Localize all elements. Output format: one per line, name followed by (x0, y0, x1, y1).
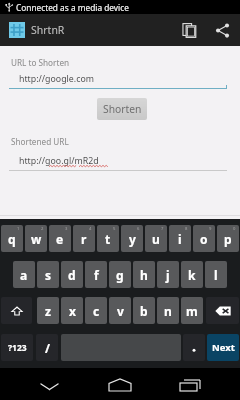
staticText: q (8, 231, 16, 247)
button[interactable]: URL to Shorten text field (9, 69, 228, 90)
staticText: h (140, 267, 148, 283)
button[interactable]: n (157, 297, 179, 324)
button[interactable]: s (37, 261, 59, 288)
staticText: l (214, 267, 218, 283)
button[interactable]: Home (104, 372, 136, 400)
button[interactable]: Share (206, 14, 238, 46)
staticText: 4 (89, 226, 92, 232)
button[interactable]: e (49, 225, 71, 252)
button[interactable]: Shift (1, 297, 32, 324)
staticText: http://goo.gl/mR2d (19, 155, 99, 167)
staticText: 2 (41, 226, 44, 232)
button[interactable]: q (1, 225, 23, 252)
staticText: i (178, 231, 182, 247)
button[interactable]: / (36, 334, 58, 361)
staticText: t (105, 231, 111, 247)
staticText: k (188, 267, 196, 283)
staticText: c (93, 303, 100, 319)
button[interactable]: o (193, 225, 215, 252)
staticText: n (164, 303, 172, 319)
button[interactable]: Hide keyboard (34, 372, 65, 400)
button[interactable]: Next (207, 334, 239, 361)
button[interactable]: w (25, 225, 47, 252)
button[interactable]: b (133, 297, 155, 324)
staticText: / (45, 340, 50, 356)
button[interactable]: ?123 (1, 334, 33, 361)
button[interactable]: z (37, 297, 59, 324)
staticText: 3 (65, 226, 68, 232)
button[interactable]: t (97, 225, 119, 252)
staticText: http://google.com (19, 73, 94, 85)
button[interactable]: y (121, 225, 143, 252)
staticText: y (129, 231, 136, 247)
staticText: 6 (137, 226, 140, 232)
button[interactable]: i (169, 225, 191, 252)
button[interactable]: h (133, 261, 155, 288)
button[interactable]: m (181, 297, 203, 324)
staticText: Connected as a media device (16, 2, 129, 13)
staticText: ShrtnR (31, 23, 65, 37)
staticText: 1 (17, 226, 20, 232)
staticText: d (68, 267, 76, 283)
button[interactable]: Shortened URL text field (9, 151, 228, 172)
staticText: 9 (209, 226, 212, 232)
staticText: 0 (233, 226, 236, 232)
staticText: Shortened URL (11, 136, 69, 147)
staticText: z (45, 303, 51, 319)
staticText: 7 (161, 226, 164, 232)
staticText: w (31, 231, 42, 247)
button[interactable]: k (181, 261, 203, 288)
staticText: b (140, 303, 148, 319)
staticText: g (116, 267, 124, 283)
button[interactable]: p (217, 225, 239, 252)
button[interactable]: Copy (174, 14, 206, 46)
button[interactable]: f (85, 261, 107, 288)
staticText: Shorten (103, 102, 142, 116)
staticText: 8 (185, 226, 188, 232)
staticText: e (56, 231, 64, 247)
staticText: p (224, 231, 232, 247)
staticText: j (166, 267, 170, 283)
button[interactable]: v (109, 297, 131, 324)
staticText: URL to Shorten (11, 57, 70, 68)
staticText: a (20, 267, 28, 283)
staticText: x (69, 303, 76, 319)
button[interactable]: Backspace (206, 297, 239, 324)
staticText: o (200, 231, 208, 247)
button[interactable]: j (157, 261, 179, 288)
staticText: f (94, 267, 99, 283)
button[interactable]: g (109, 261, 131, 288)
button[interactable]: a (13, 261, 35, 288)
staticText: u (152, 231, 160, 247)
button[interactable]: Shorten (97, 98, 147, 120)
staticText: ?123 (8, 342, 27, 354)
button[interactable]: c (85, 297, 107, 324)
staticText: r (81, 231, 87, 247)
button[interactable]: u (145, 225, 167, 252)
button[interactable]: Period (183, 334, 205, 361)
staticText: m (186, 303, 198, 319)
button[interactable]: d (61, 261, 83, 288)
staticText: s (45, 267, 52, 283)
button[interactable]: l (205, 261, 227, 288)
button[interactable]: r (73, 225, 95, 252)
staticText: 5 (113, 226, 116, 232)
button[interactable]: x (61, 297, 83, 324)
staticText: v (117, 303, 124, 319)
staticText: Next (212, 341, 235, 354)
button[interactable]: Recents (174, 372, 206, 400)
